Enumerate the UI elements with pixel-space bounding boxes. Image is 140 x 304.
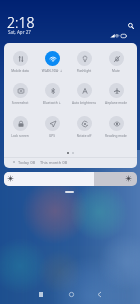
staticText: 2:18 [7,13,35,32]
staticText: Airplane mode [100,101,132,105]
staticText: Flashlight [68,69,100,73]
staticText: Mobile data [4,69,36,73]
button[interactable]: GPS [37,114,69,140]
staticText: Rotate off [68,134,100,138]
button[interactable]: Bluetooth ↓ [37,81,69,107]
button[interactable]: Back [89,284,109,304]
button[interactable]: Lock screen [5,114,37,140]
staticText: GPS [36,134,68,138]
button[interactable]: Rotate off [69,114,101,140]
staticText: Bluetooth ↓ [36,101,68,105]
staticText: Lock screen [4,134,36,138]
staticText: Reading mode [100,134,132,138]
button[interactable]: WLAN-9DA· ↓ [37,49,69,75]
button[interactable]: Airplane mode [101,81,133,107]
button[interactable]: Mobile data [5,49,37,75]
staticText: WLAN-9DA· ↓ [36,69,68,73]
button[interactable]: Flashlight [69,49,101,75]
button[interactable]: Home [61,284,81,304]
button[interactable]: Reading mode [101,114,133,140]
staticText: Sat, Apr 27 [8,29,31,35]
button[interactable]: Brightness [4,172,137,186]
button[interactable]: Recents [31,284,51,304]
button[interactable]: Auto brightness [69,81,101,107]
button[interactable]: Search [124,19,137,32]
staticText: Screenshot [4,101,36,105]
button[interactable]: Screenshot [5,81,37,107]
staticText: This month 0B [40,160,68,165]
button[interactable]: Mute [101,49,133,75]
staticText: Today 0B [18,160,36,165]
staticText: Auto brightness [68,101,100,105]
staticText: Mute [100,69,132,73]
